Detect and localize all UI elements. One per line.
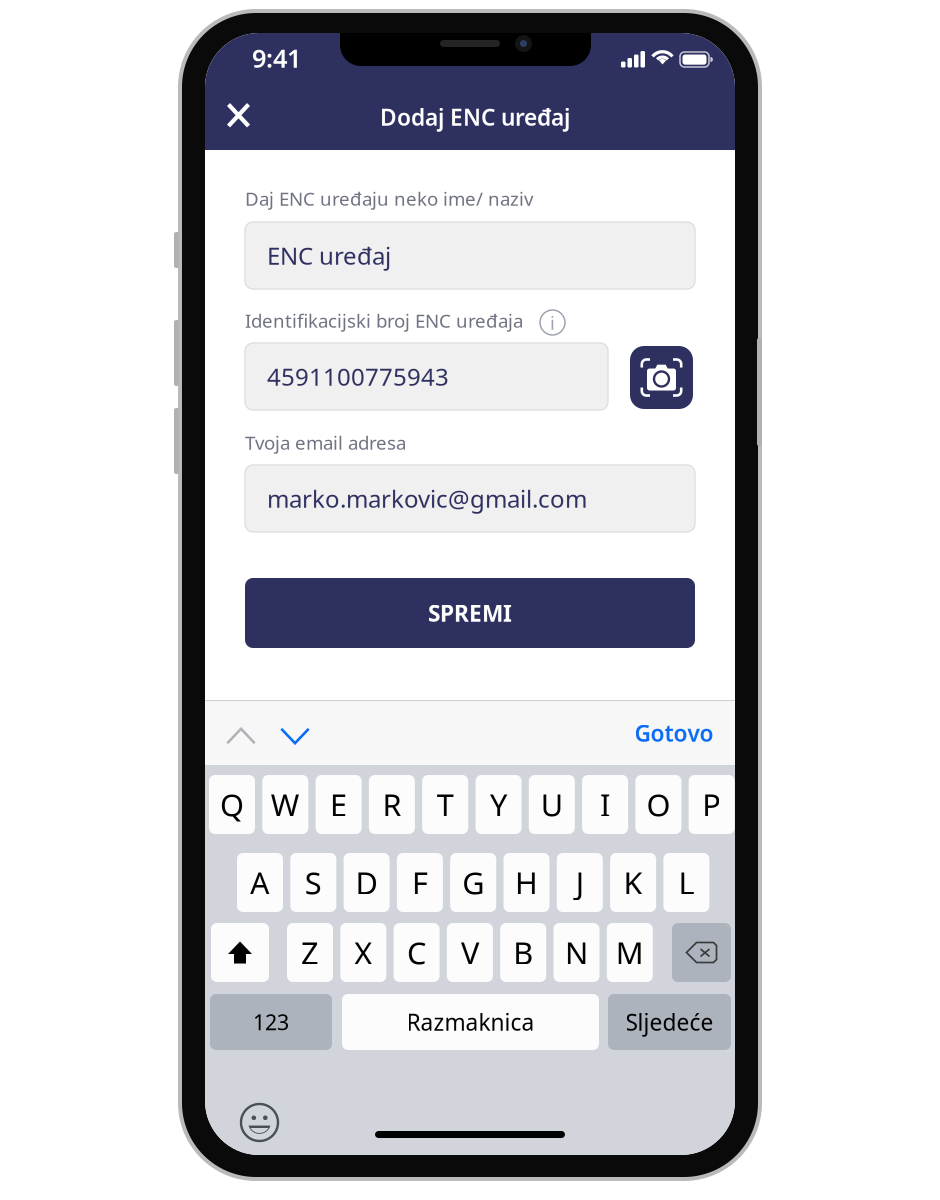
button[interactable]: Close <box>216 93 260 137</box>
staticText: i <box>550 310 555 335</box>
button[interactable]: N <box>553 923 599 982</box>
staticText: S <box>305 862 322 903</box>
button[interactable]: X <box>340 923 386 982</box>
staticText: Q <box>220 784 244 825</box>
button[interactable]: Previous field <box>217 715 265 757</box>
button[interactable]: Y <box>475 775 521 834</box>
staticText: L <box>678 862 694 903</box>
staticText: W <box>271 784 300 825</box>
staticText: 4591100775943 <box>267 361 449 392</box>
button[interactable]: U <box>529 775 575 834</box>
button[interactable]: P <box>689 775 735 834</box>
button[interactable]: R <box>369 775 415 834</box>
staticText: Y <box>490 784 507 825</box>
button[interactable]: C <box>394 923 440 982</box>
button[interactable]: A <box>237 853 283 912</box>
button[interactable]: Delete <box>672 923 731 982</box>
staticText: P <box>702 784 721 825</box>
button[interactable]: 123 <box>210 994 332 1050</box>
staticText: B <box>513 932 533 973</box>
staticText: K <box>624 862 643 903</box>
button[interactable]: W <box>262 775 308 834</box>
button[interactable]: J <box>557 853 603 912</box>
button[interactable]: B <box>500 923 546 982</box>
staticText: V <box>461 932 479 973</box>
staticText: G <box>462 862 484 903</box>
staticText: C <box>407 932 426 973</box>
staticText: H <box>515 862 538 903</box>
button[interactable]: K <box>610 853 656 912</box>
button[interactable]: Z <box>287 923 333 982</box>
button[interactable]: More info <box>540 310 565 335</box>
staticText: U <box>541 784 563 825</box>
button[interactable]: Scan ENC ID <box>630 346 693 409</box>
staticText: Tvoja email adresa <box>245 430 406 455</box>
button[interactable]: G <box>450 853 496 912</box>
button[interactable]: Shift <box>211 923 269 982</box>
button[interactable]: E <box>316 775 362 834</box>
button[interactable]: Razmaknica <box>342 994 599 1050</box>
staticText: A <box>250 862 270 903</box>
staticText: F <box>412 862 428 903</box>
staticText: T <box>437 784 454 825</box>
staticText: Z <box>301 932 319 973</box>
staticText: ENC uređaj <box>267 240 391 271</box>
staticText: E <box>330 784 347 825</box>
button[interactable]: T <box>422 775 468 834</box>
staticText: I <box>600 784 610 825</box>
staticText: Sljedeće <box>625 1007 713 1037</box>
staticText: Razmaknica <box>406 1007 534 1037</box>
staticText: Dodaj ENC uređaj <box>380 102 570 132</box>
staticText: SPREMI <box>428 598 512 628</box>
button[interactable]: L <box>663 853 709 912</box>
button[interactable]: SPREMI <box>245 578 695 648</box>
button[interactable]: Emoji keyboard <box>240 1103 279 1142</box>
button[interactable]: Q <box>209 775 255 834</box>
button[interactable]: D <box>344 853 390 912</box>
button[interactable]: Gotovo <box>620 715 728 751</box>
button[interactable]: Sljedeće <box>608 994 731 1050</box>
button[interactable]: Next field <box>271 715 319 757</box>
button[interactable]: M <box>607 923 653 982</box>
button[interactable]: S <box>290 853 336 912</box>
staticText: J <box>576 862 584 903</box>
staticText: X <box>354 932 372 973</box>
staticText: 123 <box>253 1008 289 1036</box>
button[interactable]: H <box>503 853 549 912</box>
staticText: Gotovo <box>634 718 713 748</box>
staticText: marko.markovic@gmail.com <box>267 483 587 514</box>
button[interactable]: I <box>582 775 628 834</box>
staticText: O <box>646 784 670 825</box>
staticText: M <box>616 932 644 973</box>
button[interactable]: O <box>635 775 681 834</box>
button[interactable]: V <box>447 923 493 982</box>
staticText: 9:41 <box>252 41 301 75</box>
staticText: R <box>382 784 401 825</box>
staticText: N <box>565 932 588 973</box>
staticText: D <box>356 862 378 903</box>
button[interactable]: F <box>397 853 443 912</box>
staticText: Daj ENC uređaju neko ime/ naziv <box>245 186 533 211</box>
staticText: Identifikacijski broj ENC uređaja <box>245 308 523 333</box>
